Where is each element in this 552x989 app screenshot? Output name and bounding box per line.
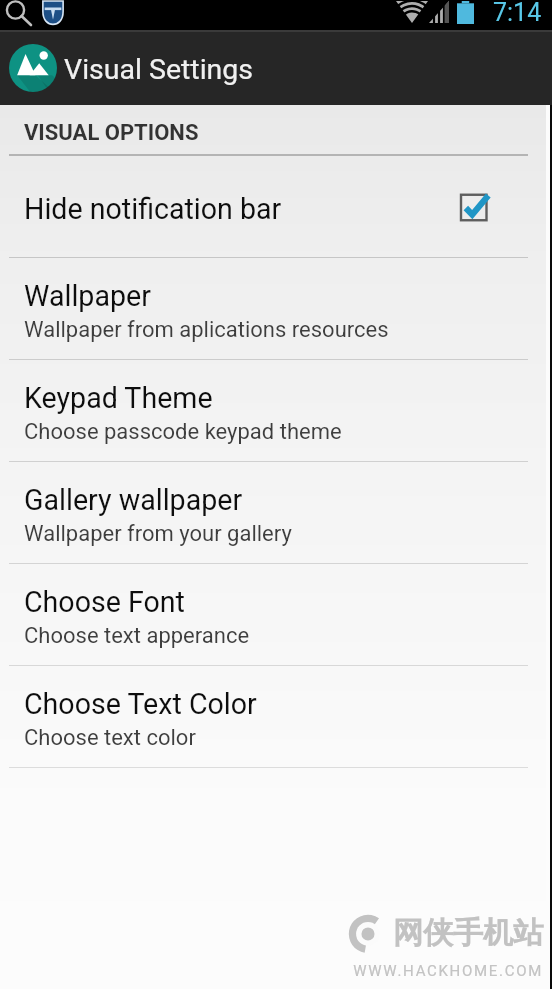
button[interactable]: Wallpaper xyxy=(0,258,552,359)
staticText: Wallpaper from your gallery xyxy=(24,521,292,547)
staticText: Choose text color xyxy=(24,725,196,751)
staticText: 网侠手机站 xyxy=(393,914,543,952)
staticText: Choose passcode keypad theme xyxy=(24,419,342,445)
staticText: Choose Text Color xyxy=(24,687,257,721)
staticText: Wallpaper from aplications resources xyxy=(24,317,389,343)
button[interactable]: Choose Text Color xyxy=(0,666,552,767)
staticText: Visual Settings xyxy=(64,53,254,86)
button[interactable]: Gallery wallpaper xyxy=(0,462,552,563)
staticText: Wallpaper xyxy=(24,279,151,313)
staticText: Hide notification bar xyxy=(24,192,282,226)
button[interactable]: Choose Font xyxy=(0,564,552,665)
staticText: Choose text apperance xyxy=(24,623,250,649)
staticText: Choose Font xyxy=(24,585,185,619)
staticText: Keypad Theme xyxy=(24,381,213,415)
button[interactable]: App icon, navigate up xyxy=(9,44,57,92)
staticText: WWW.HACKHOME.COM xyxy=(353,962,543,980)
button[interactable]: Keypad Theme xyxy=(0,360,552,461)
staticText: VISUAL OPTIONS xyxy=(24,120,199,146)
staticText: Gallery wallpaper xyxy=(24,483,243,517)
button[interactable]: Hide notification bar xyxy=(0,156,552,257)
staticText: 7:14 xyxy=(493,0,542,27)
